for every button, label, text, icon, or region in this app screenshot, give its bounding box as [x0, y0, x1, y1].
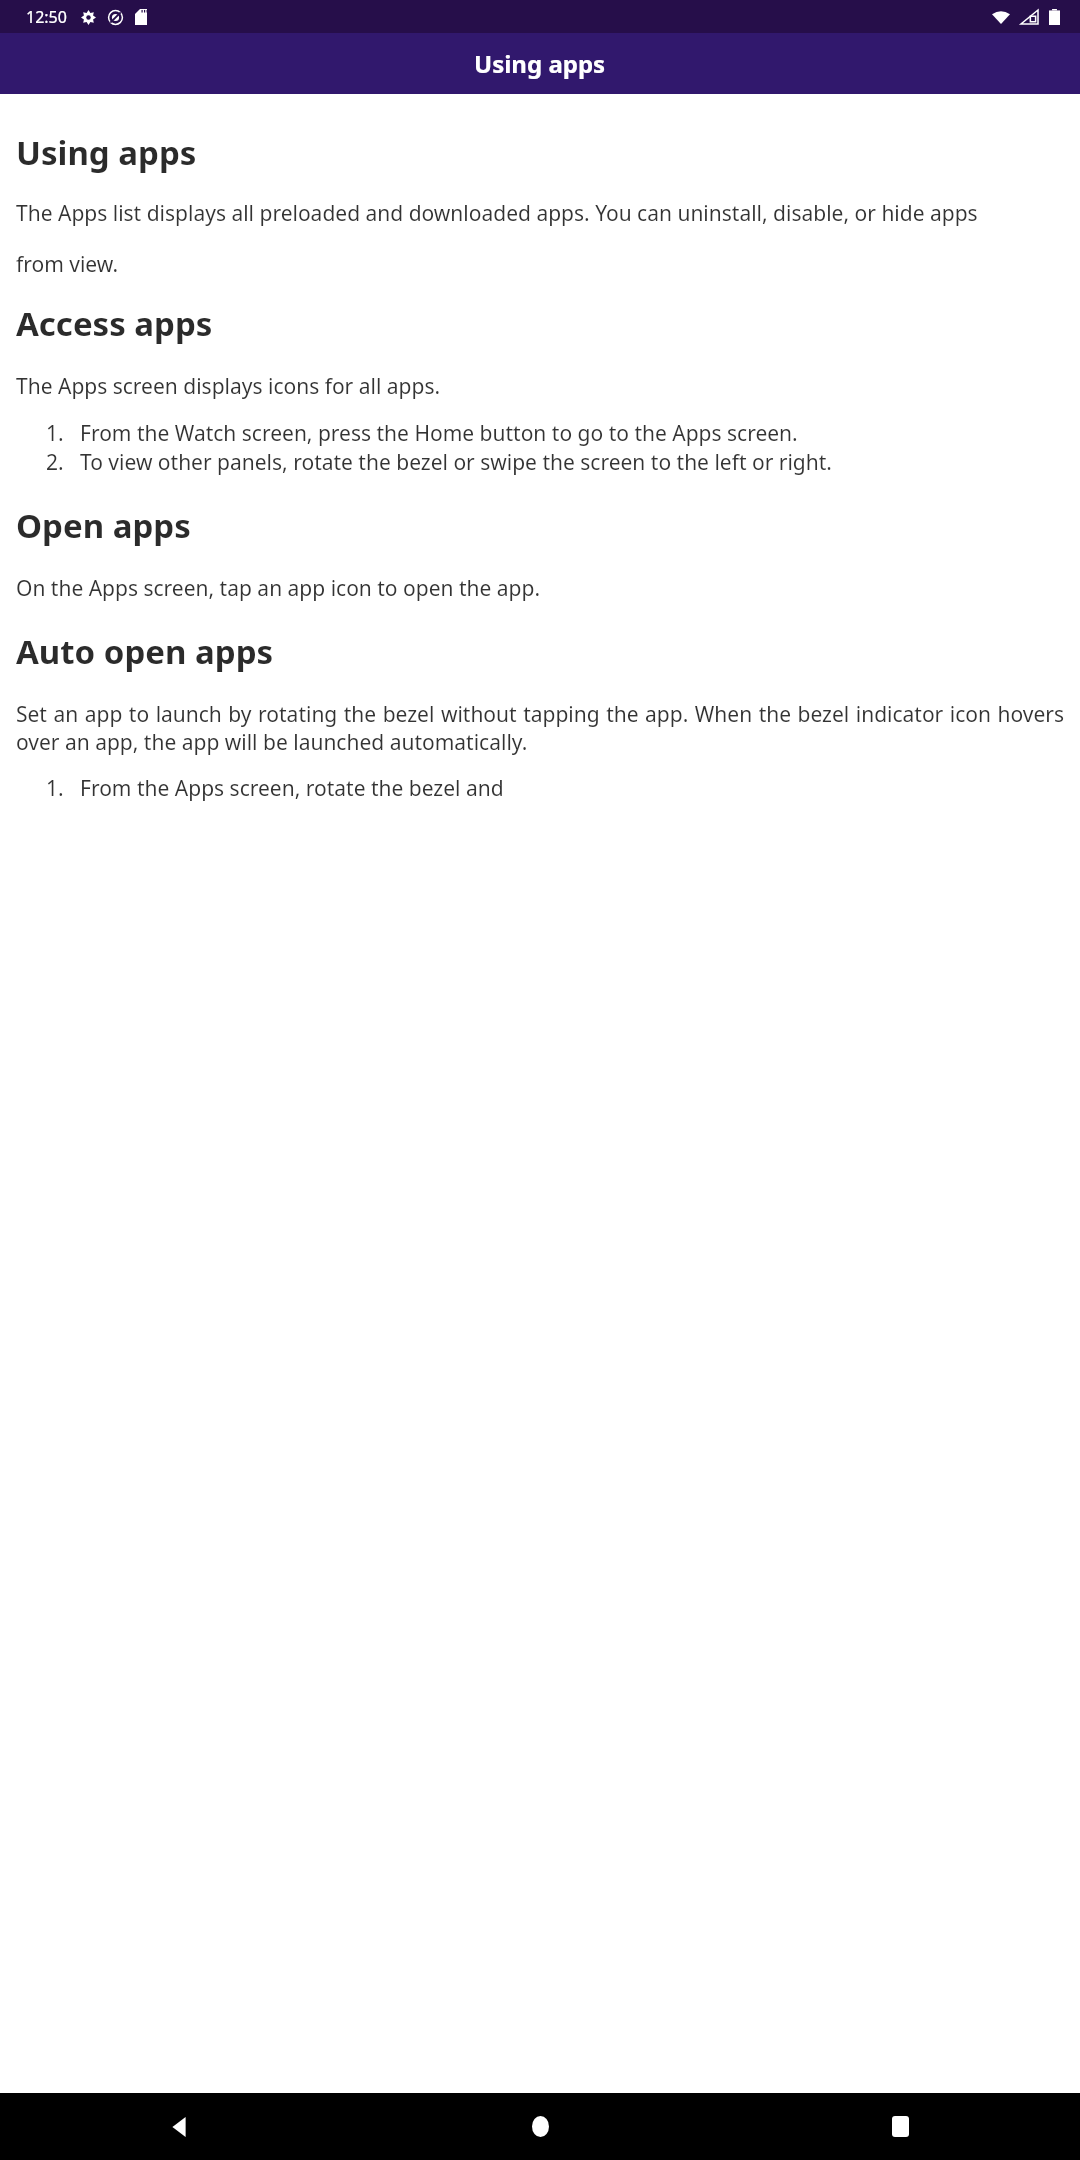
staticText: To view other panels, rotate the bezel o… — [80, 448, 1064, 477]
staticText: 1. — [46, 419, 64, 448]
staticText: The Apps list displays all preloaded and… — [16, 199, 1064, 228]
staticText: 12:50 — [26, 6, 67, 28]
staticText: From the Apps screen, rotate the bezel a… — [80, 774, 1064, 803]
staticText: Auto open apps — [16, 629, 274, 674]
button[interactable]: Home — [360, 2093, 720, 2160]
staticText: From the Watch screen, press the Home bu… — [80, 419, 1064, 448]
button[interactable]: Recent apps — [720, 2093, 1080, 2160]
staticText: Access apps — [16, 301, 213, 346]
staticText: Set an app to launch by rotating the bez… — [16, 700, 1064, 756]
staticText: 2. — [46, 448, 64, 477]
staticText: On the Apps screen, tap an app icon to o… — [16, 574, 1064, 603]
staticText: Open apps — [16, 503, 191, 548]
staticText: Using apps — [16, 130, 197, 175]
staticText: 1. — [46, 774, 64, 803]
staticText: The Apps screen displays icons for all a… — [16, 372, 1064, 401]
button[interactable]: Using apps — [0, 33, 1080, 94]
button[interactable]: Back — [0, 2093, 360, 2160]
staticText: from view. — [16, 250, 1064, 279]
staticText: Using apps — [474, 47, 606, 80]
